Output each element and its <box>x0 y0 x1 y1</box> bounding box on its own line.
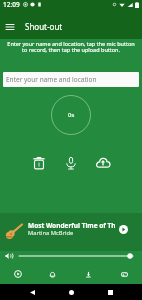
button[interactable]: Enter your name and location <box>3 72 139 87</box>
button[interactable]: Delete recording <box>30 154 48 172</box>
button[interactable]: Most Wonderful Time of The Year <box>0 213 142 251</box>
button[interactable]: Mute <box>4 251 14 261</box>
staticText: Martina McBride <box>28 229 74 237</box>
staticText: 0s <box>68 111 75 119</box>
staticText: Most Wonderful Time of The Year <box>28 221 115 230</box>
button[interactable]: Play <box>0 264 35 284</box>
button[interactable]: Download <box>70 264 106 284</box>
staticText: 12:09 <box>3 0 20 9</box>
button[interactable]: Notifications <box>35 264 70 284</box>
staticText: Shout-out <box>25 21 63 32</box>
button[interactable]: Recents <box>103 285 117 299</box>
button[interactable]: Upload <box>94 154 112 172</box>
button[interactable]: Open navigation drawer <box>0 17 19 36</box>
staticText: Enter your name and location <box>6 75 97 84</box>
button[interactable]: Record <box>62 154 80 172</box>
button[interactable]: Play <box>119 225 128 234</box>
button[interactable]: Back <box>25 285 39 299</box>
button[interactable]: Gallery <box>106 264 142 284</box>
staticText: Enter your name and location, tap the mi… <box>6 40 136 54</box>
button[interactable]: Home <box>64 285 78 299</box>
